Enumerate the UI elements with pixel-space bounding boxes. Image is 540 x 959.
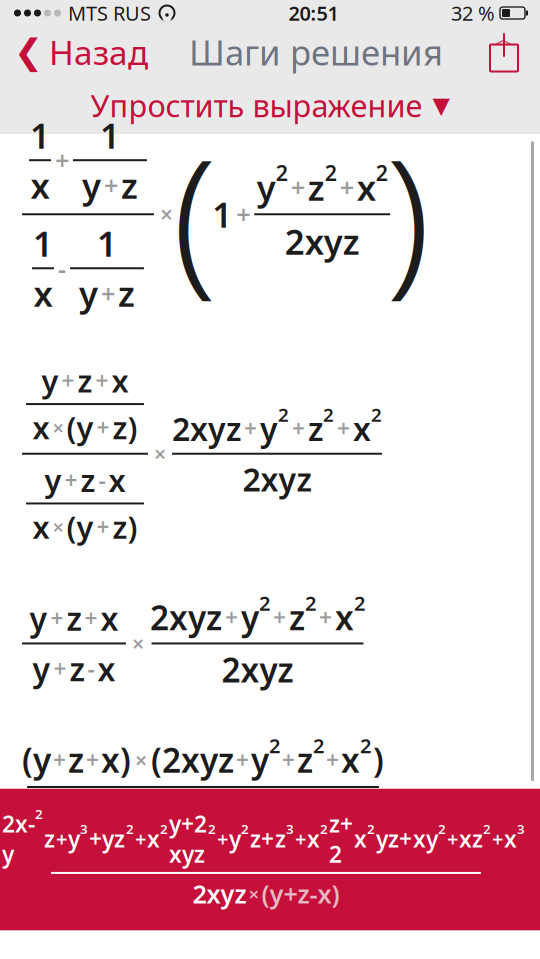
staticText: 2xyz <box>150 595 222 639</box>
button[interactable]: Share <box>484 31 540 73</box>
staticText: 2 <box>126 820 134 838</box>
staticText: z <box>77 360 92 401</box>
staticText: + <box>86 745 99 775</box>
staticText: + <box>101 276 115 310</box>
staticText: (y+z-x) <box>261 877 339 910</box>
staticText: x <box>341 738 360 782</box>
staticText: x <box>32 407 49 448</box>
staticText: y <box>260 407 278 450</box>
staticText: ︿ <box>494 27 514 51</box>
staticText: x <box>100 597 118 639</box>
staticText: z <box>44 824 55 854</box>
staticText: + <box>295 825 306 852</box>
staticText: Назад <box>49 30 148 74</box>
staticText: + <box>447 825 458 852</box>
staticText: 1 <box>30 112 50 158</box>
staticText: z+ <box>250 824 274 854</box>
staticText: ❮ <box>14 32 43 72</box>
button[interactable]: Упростить выражение <box>0 78 540 133</box>
staticText: 2 <box>325 158 337 187</box>
staticText: + <box>236 745 249 775</box>
staticText: z <box>68 738 84 782</box>
staticText: 32 % <box>451 0 495 26</box>
staticText: + <box>56 825 67 852</box>
staticText: 2 <box>483 820 491 838</box>
staticText: 2 <box>208 820 216 838</box>
staticText: 2 <box>320 820 328 838</box>
staticText: ) <box>386 108 430 320</box>
staticText: 2xyz <box>242 458 311 500</box>
staticText: + <box>273 602 286 632</box>
staticText: 2 <box>438 820 446 838</box>
staticText: x <box>111 360 128 401</box>
staticText: + <box>337 413 350 444</box>
staticText: + <box>84 603 97 633</box>
staticText: + <box>135 825 146 852</box>
staticText: (y <box>194 792 223 836</box>
staticText: z+2 <box>329 809 353 869</box>
staticText: 1 <box>212 191 232 237</box>
staticText: x) <box>101 738 131 782</box>
staticText: z <box>69 647 84 690</box>
staticText: +yz <box>89 824 125 854</box>
staticText: ( <box>173 108 217 320</box>
staticText: y+2xyz <box>169 809 207 869</box>
staticText: xy <box>413 824 438 854</box>
staticText: - <box>87 654 94 684</box>
staticText: z <box>289 595 305 639</box>
staticText: z) <box>112 506 137 547</box>
staticText: 3 <box>517 820 525 838</box>
staticText: y <box>41 360 58 401</box>
staticText: ▼ <box>432 92 449 118</box>
staticText: ) <box>373 738 384 782</box>
staticText: + <box>96 512 109 542</box>
staticText: x <box>32 506 49 547</box>
staticText: + <box>50 603 63 633</box>
staticText: 2 <box>360 732 371 759</box>
staticText: 2xyz <box>192 877 246 910</box>
staticText: × <box>248 881 259 906</box>
staticText: z <box>275 824 286 854</box>
staticText: + <box>217 825 228 852</box>
staticText: Шаги решения <box>189 29 443 75</box>
staticText: y <box>229 824 241 854</box>
staticText: - <box>98 465 105 495</box>
staticText: 2 <box>269 732 280 759</box>
staticText: (y <box>22 738 51 782</box>
staticText: + <box>53 654 66 684</box>
staticText: (y <box>66 506 93 547</box>
staticText: 2xy <box>2 809 35 869</box>
staticText: 2 <box>367 820 375 838</box>
staticText: + <box>225 602 238 632</box>
staticText: 2 <box>376 158 388 187</box>
staticText: 2xyz <box>172 407 241 450</box>
staticText: + <box>282 745 295 775</box>
staticText: 2 <box>241 820 249 838</box>
staticText: 2 <box>313 732 324 759</box>
staticText: 2xyz <box>221 647 293 692</box>
staticText: (y <box>66 407 93 448</box>
staticText: 1 <box>100 112 120 158</box>
staticText: x <box>357 164 376 210</box>
staticText: Упростить выражение <box>90 85 422 126</box>
staticText: 1 <box>97 220 117 266</box>
staticText: 2 <box>35 805 43 823</box>
staticText: z <box>297 738 313 782</box>
staticText: 2 <box>278 402 289 427</box>
staticText: 2 <box>323 402 334 427</box>
button[interactable]: ❮ <box>0 22 148 82</box>
staticText: 3 <box>286 820 294 838</box>
staticText: × <box>132 629 144 658</box>
staticText: y <box>29 597 47 639</box>
staticText: 2 <box>305 590 316 616</box>
staticText: + <box>340 170 354 204</box>
staticText: z <box>308 164 325 210</box>
staticText: x <box>97 647 115 690</box>
staticText: × <box>160 199 173 229</box>
staticText: yz+ <box>376 824 412 854</box>
staticText: z <box>66 597 81 639</box>
staticText: 1 <box>33 220 53 266</box>
staticText: x <box>353 407 371 450</box>
